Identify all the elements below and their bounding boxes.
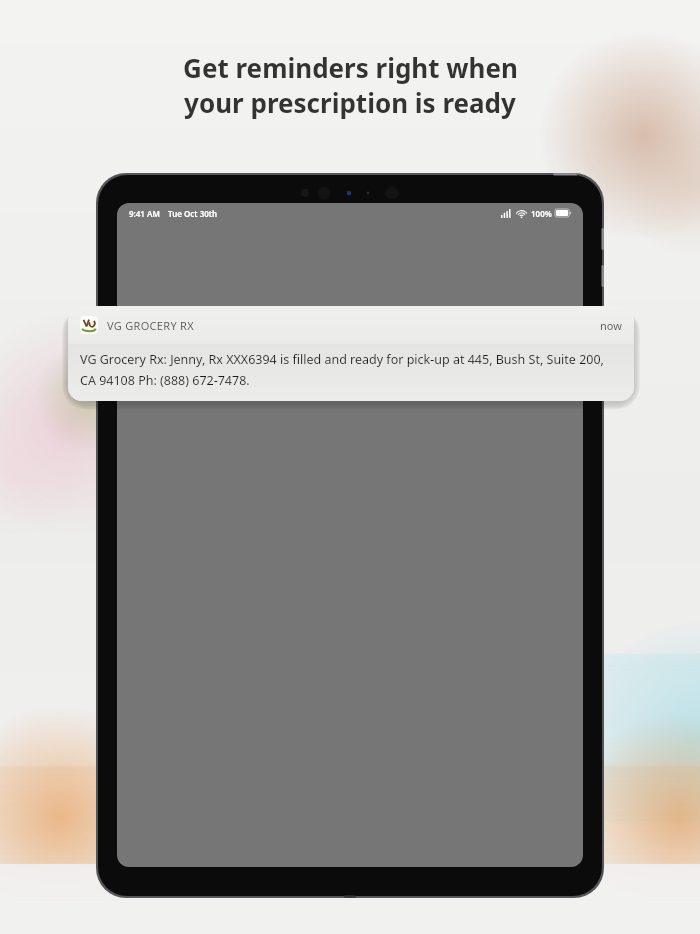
staticText: VG Grocery Rx: Jenny, Rx XXX6394 is fill…	[80, 351, 622, 389]
staticText: 9:41 AM	[129, 208, 160, 219]
staticText: Tue Oct 30th	[168, 208, 218, 219]
staticText: your prescription is ready	[184, 85, 516, 120]
button[interactable]: VG Grocery Rx app icon	[68, 306, 634, 401]
staticText: now	[600, 318, 622, 333]
staticText: Get reminders right when	[183, 50, 518, 85]
other: VG Grocery Rx app icon	[80, 316, 98, 334]
staticText: VG GROCERY RX	[107, 318, 194, 333]
staticText: 100%	[531, 208, 552, 219]
